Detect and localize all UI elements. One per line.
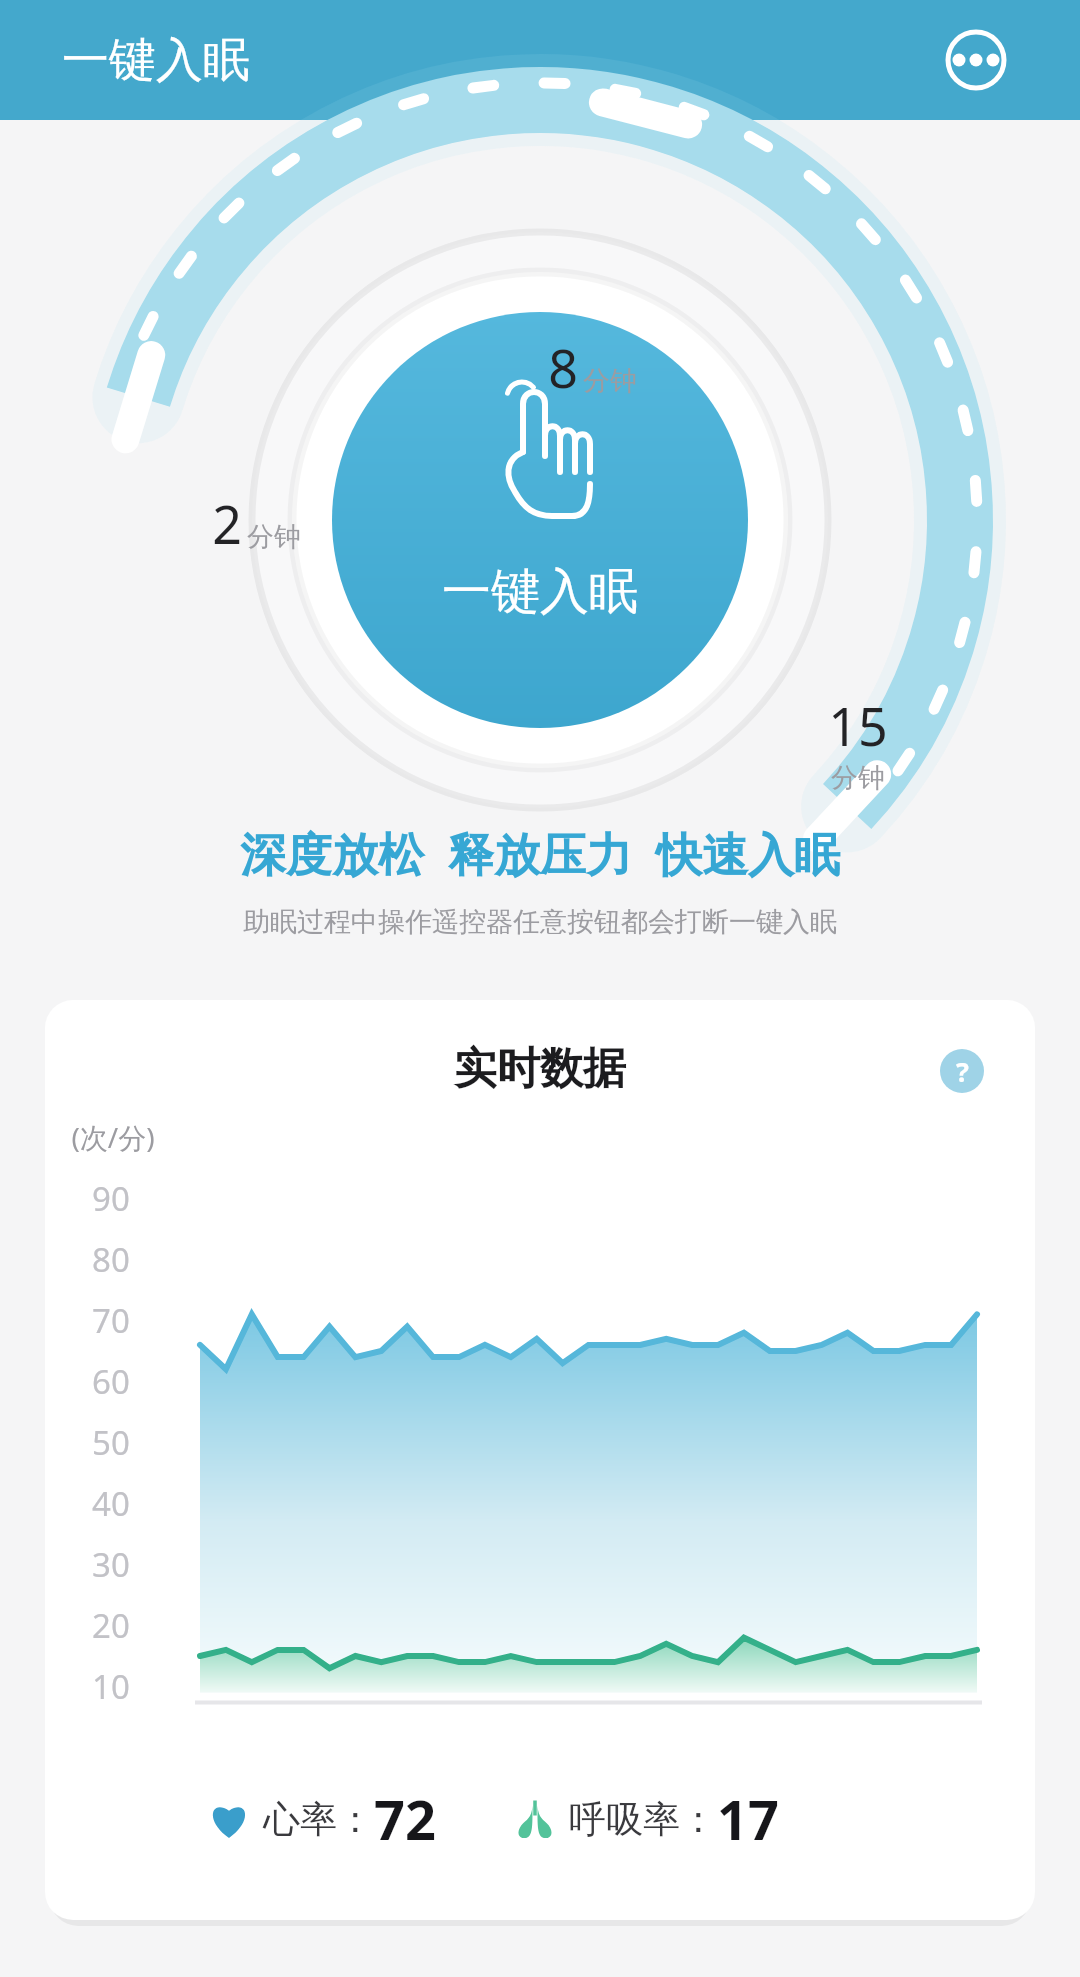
staticText: 8	[548, 332, 578, 403]
staticText: 深度放松 释放压力 快速入眠	[240, 822, 840, 885]
staticText: 20	[92, 1603, 130, 1648]
staticText: 40	[92, 1481, 130, 1526]
staticText: 80	[92, 1237, 130, 1282]
staticText: 2	[212, 488, 242, 559]
staticText: 15	[828, 690, 888, 761]
staticText: 50	[92, 1420, 130, 1465]
staticText: 30	[92, 1542, 130, 1587]
staticText: 分钟	[247, 520, 301, 554]
button[interactable]: 一键入眠	[332, 312, 748, 728]
staticText: 一键入眠	[62, 31, 250, 90]
staticText: ?	[956, 1053, 969, 1090]
staticText: 60	[92, 1359, 130, 1404]
staticText: 助眠过程中操作遥控器任意按钮都会打断一键入眠	[243, 905, 837, 939]
staticText: 呼吸率：	[569, 1796, 717, 1843]
staticText: 分钟	[831, 761, 885, 795]
staticText: 实时数据	[454, 1042, 626, 1096]
staticText: 10	[92, 1664, 130, 1709]
staticText: 心率：	[263, 1796, 374, 1843]
staticText: 90	[92, 1176, 130, 1221]
staticText: 17	[717, 1782, 779, 1856]
staticText: 72	[374, 1782, 436, 1856]
staticText: 分钟	[583, 364, 637, 398]
staticText: (次/分)	[71, 1118, 155, 1156]
button[interactable]: More options	[928, 12, 1024, 108]
button[interactable]: Help	[933, 1042, 991, 1100]
staticText: 70	[92, 1298, 130, 1343]
staticText: 一键入眠	[442, 561, 638, 623]
